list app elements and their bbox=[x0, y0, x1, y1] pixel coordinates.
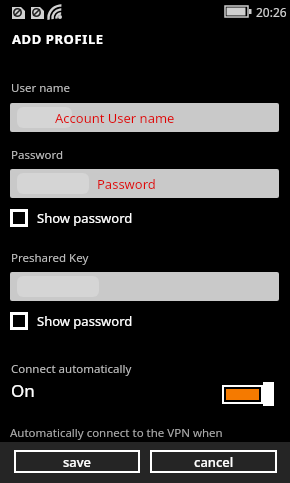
staticText: On bbox=[11, 379, 35, 402]
button[interactable]: cancel bbox=[150, 450, 277, 473]
staticText: cancel bbox=[194, 453, 234, 471]
button[interactable]: Show password bbox=[10, 312, 133, 330]
staticText: Preshared Key bbox=[11, 250, 89, 266]
staticText: Show password bbox=[37, 312, 133, 330]
staticText: Password bbox=[11, 147, 64, 163]
staticText: Automatically connect to the VPN when bbox=[10, 425, 223, 441]
staticText: Show password bbox=[37, 209, 133, 227]
staticText: User name bbox=[11, 80, 70, 96]
staticText: Account User name bbox=[55, 109, 175, 127]
button[interactable] bbox=[10, 272, 279, 301]
staticText: Password bbox=[97, 175, 156, 193]
staticText: 20:26 bbox=[256, 4, 287, 20]
button[interactable]: Show password bbox=[10, 209, 133, 227]
button[interactable]: Password bbox=[10, 169, 279, 198]
button[interactable]: Account User name bbox=[10, 103, 279, 132]
staticText: Connect automatically bbox=[11, 361, 132, 377]
staticText: save bbox=[63, 453, 92, 471]
staticText: ADD PROFILE bbox=[12, 30, 104, 48]
button[interactable]: save bbox=[14, 450, 140, 473]
